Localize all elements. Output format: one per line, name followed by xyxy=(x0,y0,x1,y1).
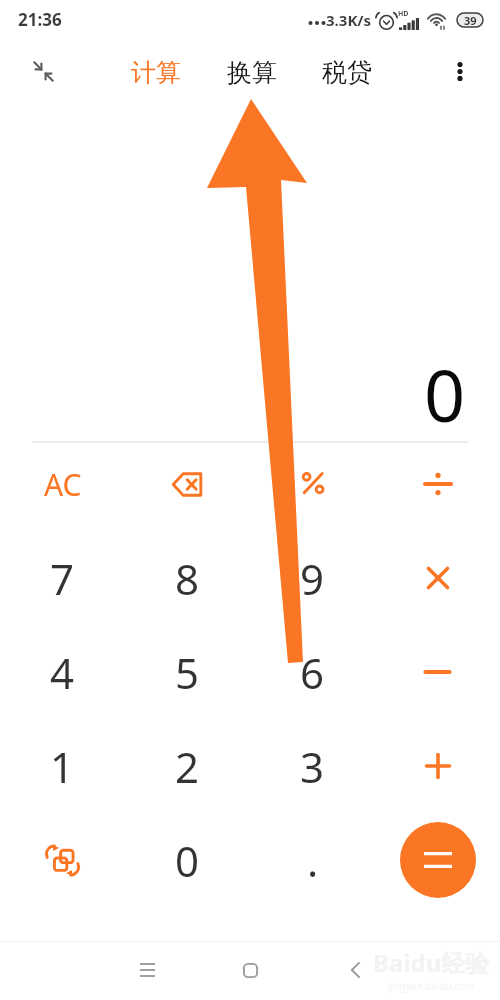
button[interactable]: 7 xyxy=(0,531,125,625)
button[interactable]: Collapse xyxy=(26,54,60,88)
staticText: 3.3K/s xyxy=(326,10,372,30)
button[interactable]: Home xyxy=(228,948,272,992)
staticText: 税贷 xyxy=(322,57,372,88)
staticText: Baidu经验 xyxy=(373,946,490,979)
staticText: jingyan.baidu.com xyxy=(388,979,475,993)
button[interactable]: Divide xyxy=(375,437,500,531)
staticText: 9 xyxy=(300,550,325,607)
button[interactable]: 3 xyxy=(250,719,375,813)
staticText: 0 xyxy=(424,345,466,443)
staticText: 换算 xyxy=(227,57,277,88)
staticText: 21:36 xyxy=(18,8,62,31)
button[interactable]: 计算 xyxy=(127,51,185,94)
button[interactable]: 换算 xyxy=(223,51,281,94)
staticText: 3 xyxy=(300,738,325,795)
staticText: 5 xyxy=(175,644,200,701)
button[interactable]: Multiply xyxy=(375,531,500,625)
button[interactable]: Recents xyxy=(125,948,169,992)
staticText: AC xyxy=(44,464,82,505)
button[interactable]: Equals xyxy=(375,813,500,907)
button[interactable]: 6 xyxy=(250,625,375,719)
button[interactable]: More options xyxy=(443,54,477,88)
staticText: 1 xyxy=(50,738,75,795)
button[interactable]: Convert xyxy=(0,813,125,907)
staticText: 6 xyxy=(300,644,325,701)
button[interactable]: 税贷 xyxy=(318,51,376,94)
staticText: 7 xyxy=(50,550,75,607)
staticText: HD xyxy=(398,9,409,19)
button[interactable]: 4 xyxy=(0,625,125,719)
staticText: . xyxy=(307,832,319,889)
staticText: 8 xyxy=(175,550,200,607)
staticText: 计算 xyxy=(131,57,181,88)
button[interactable]: . xyxy=(250,813,375,907)
button[interactable]: Backspace xyxy=(125,437,250,531)
button[interactable]: Percent xyxy=(250,437,375,531)
button[interactable]: Subtract xyxy=(375,625,500,719)
staticText: 2 xyxy=(175,738,200,795)
button[interactable]: AC xyxy=(0,437,125,531)
button[interactable]: 8 xyxy=(125,531,250,625)
button[interactable]: 5 xyxy=(125,625,250,719)
staticText: 4 xyxy=(50,644,75,701)
button[interactable]: Add xyxy=(375,719,500,813)
button[interactable]: Back xyxy=(333,948,377,992)
button[interactable]: 0 xyxy=(125,813,250,907)
staticText: 39 xyxy=(464,13,477,28)
button[interactable]: 9 xyxy=(250,531,375,625)
button[interactable]: 2 xyxy=(125,719,250,813)
staticText: 0 xyxy=(175,832,200,889)
button[interactable]: 1 xyxy=(0,719,125,813)
